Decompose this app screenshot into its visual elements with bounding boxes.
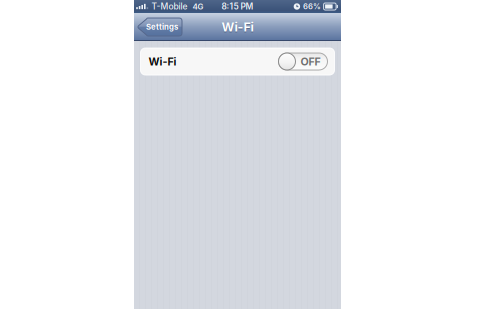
staticText: 4G (192, 2, 203, 11)
button[interactable]: Wi-Fi (140, 48, 334, 75)
button[interactable]: Settings (138, 18, 182, 36)
staticText: T-Mobile (151, 1, 187, 12)
staticText: 66% (303, 2, 321, 11)
staticText: Wi-Fi (221, 20, 253, 35)
staticText: Settings (146, 22, 178, 32)
staticText: Wi-Fi (221, 19, 253, 34)
staticText: 8:15 PM (221, 1, 253, 12)
staticText: Wi-Fi (148, 55, 176, 68)
staticText: OFF (300, 55, 320, 68)
